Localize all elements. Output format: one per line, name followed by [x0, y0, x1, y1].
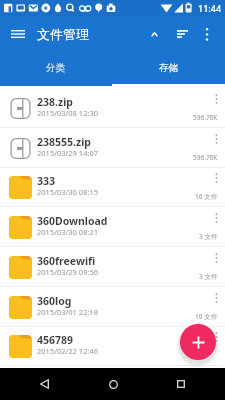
staticText: 360log — [37, 294, 187, 308]
button[interactable]: Back — [20, 368, 68, 400]
staticText: 分类 — [46, 62, 66, 74]
staticText: 2015/03/30 08:15 — [37, 187, 187, 197]
button[interactable]: Collapse — [140, 20, 168, 48]
button[interactable]: Home — [89, 368, 137, 400]
staticText: 2015/03/08 12:30 — [37, 108, 187, 118]
staticText: 596.78K — [193, 153, 218, 162]
staticText: 文件管理 — [37, 26, 89, 42]
button[interactable]: More options — [193, 20, 221, 48]
staticText: 存储 — [159, 62, 179, 74]
button[interactable]: 333 — [0, 167, 225, 207]
button[interactable]: More — [208, 210, 224, 226]
button[interactable]: 360Download — [0, 207, 225, 247]
staticText: 360Download — [37, 214, 187, 228]
button[interactable]: 360log — [0, 287, 225, 327]
staticText: 2015/02/22 12:46 — [37, 346, 187, 356]
staticText: 2015/03/30 08:21 — [37, 227, 187, 237]
staticText: 10 文件 — [195, 312, 218, 321]
button[interactable]: 分类 — [0, 52, 112, 84]
button[interactable]: 238.zip — [0, 88, 225, 128]
staticText: 16 文件 — [195, 192, 218, 201]
staticText: 2015/03/29 09:56 — [37, 267, 187, 277]
button[interactable]: 238555.zip — [0, 128, 225, 168]
button[interactable]: Menu — [4, 20, 32, 48]
staticText: 333 — [37, 174, 187, 188]
button[interactable]: Sort — [168, 20, 196, 48]
button[interactable]: More — [208, 329, 224, 345]
button[interactable]: 456789 — [0, 326, 225, 366]
button[interactable]: Recents — [157, 368, 205, 400]
staticText: 238555.zip — [37, 135, 187, 149]
button[interactable]: 存储 — [112, 52, 225, 84]
button[interactable]: More — [208, 170, 224, 186]
staticText: 3 文件 — [199, 272, 218, 281]
staticText: 11:44 — [198, 2, 222, 14]
staticText: 2015/03/29 14:07 — [37, 148, 187, 158]
button[interactable]: More — [208, 250, 224, 266]
button[interactable]: More — [208, 91, 224, 107]
button[interactable]: Add — [180, 324, 216, 360]
staticText: 238.zip — [37, 95, 187, 109]
button[interactable]: More — [208, 290, 224, 306]
button[interactable]: 360freewifi — [0, 247, 225, 287]
staticText: 3 文件 — [199, 232, 218, 241]
staticText: 2015/03/01 22:18 — [37, 307, 187, 317]
staticText: 456789 — [37, 333, 187, 347]
staticText: 596.78K — [193, 113, 218, 122]
staticText: 360freewifi — [37, 254, 187, 268]
button[interactable]: More — [208, 131, 224, 147]
